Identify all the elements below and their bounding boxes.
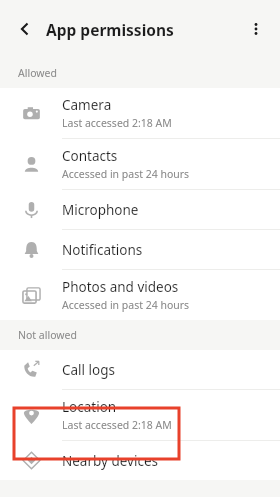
staticText: Last accessed 2:18 AM bbox=[62, 116, 172, 130]
staticText: Photos and videos bbox=[62, 278, 179, 296]
staticText: Camera bbox=[62, 96, 112, 114]
staticText: Accessed in past 24 hours bbox=[62, 167, 190, 181]
button[interactable]: Camera bbox=[0, 88, 280, 138]
staticText: Nearby devices bbox=[62, 452, 158, 470]
button[interactable]: More options bbox=[239, 12, 273, 46]
staticText: App permissions bbox=[46, 19, 174, 40]
button[interactable]: Notifications bbox=[0, 230, 280, 269]
staticText: Microphone bbox=[62, 201, 139, 219]
button[interactable]: Back bbox=[8, 12, 42, 46]
staticText: Call logs bbox=[62, 361, 116, 379]
button[interactable]: Microphone bbox=[0, 190, 280, 229]
staticText: Not allowed bbox=[18, 328, 77, 342]
staticText: Location bbox=[62, 398, 117, 416]
button[interactable]: Location bbox=[0, 390, 280, 440]
button[interactable]: Nearby devices bbox=[0, 441, 280, 480]
staticText: Contacts bbox=[62, 147, 118, 165]
button[interactable]: Photos and videos bbox=[0, 270, 280, 320]
staticText: Last accessed 2:18 AM bbox=[62, 418, 172, 432]
staticText: Notifications bbox=[62, 241, 143, 259]
staticText: Allowed bbox=[18, 66, 57, 80]
staticText: Accessed in past 24 hours bbox=[62, 298, 190, 312]
button[interactable]: Call logs bbox=[0, 350, 280, 389]
button[interactable]: Contacts bbox=[0, 139, 280, 189]
